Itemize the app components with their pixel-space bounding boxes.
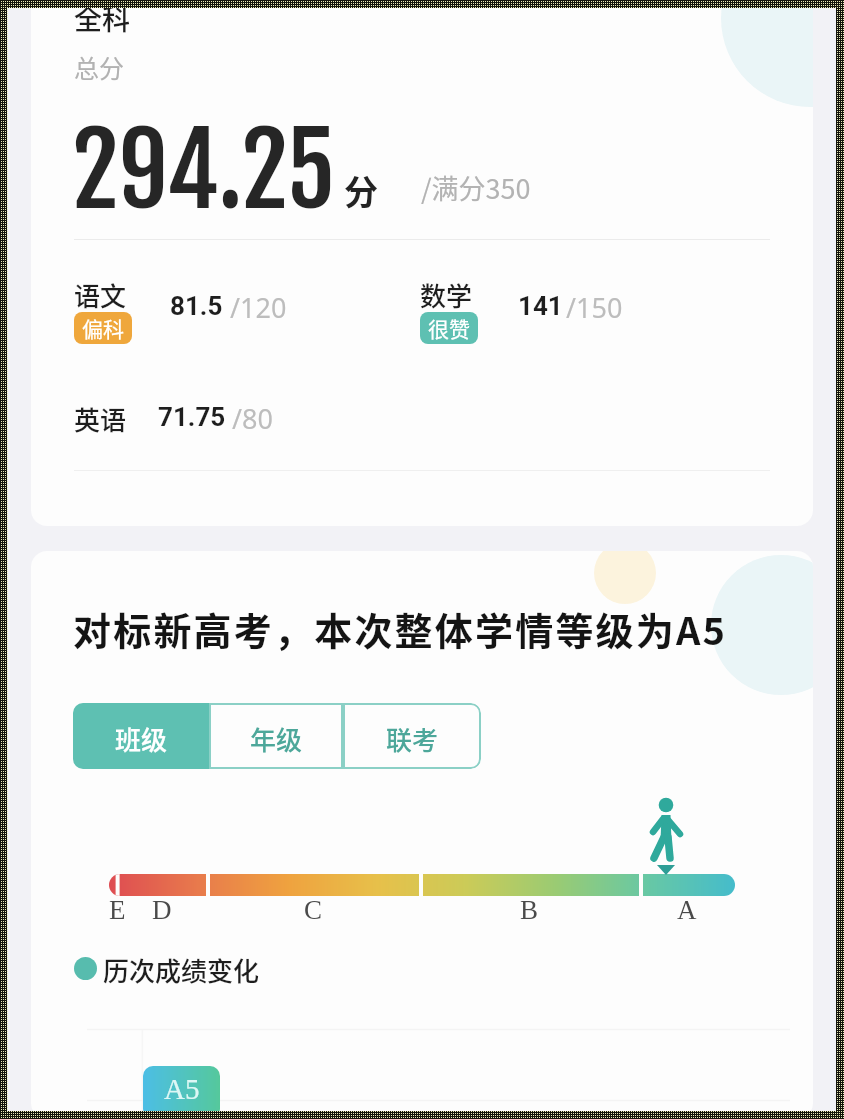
- staticText: A5: [164, 1073, 200, 1105]
- button[interactable]: A5: [143, 1066, 220, 1119]
- button[interactable]: 班级: [73, 703, 209, 769]
- button[interactable]: 全科: [31, 0, 813, 526]
- staticText: 294.25: [72, 109, 335, 232]
- button[interactable]: 联考: [343, 703, 481, 769]
- staticText: E: [109, 895, 126, 925]
- button[interactable]: 很赞: [420, 312, 478, 344]
- staticText: 81.5: [170, 291, 223, 321]
- staticText: 141: [518, 291, 563, 321]
- staticText: D: [152, 895, 172, 925]
- other: Grade band, current level A: [31, 551, 813, 1119]
- staticText: 年级: [250, 720, 303, 758]
- button[interactable]: 偏科: [74, 312, 132, 344]
- staticText: 很赞: [428, 313, 470, 343]
- staticText: 数学: [420, 276, 473, 314]
- staticText: /满分350: [421, 168, 531, 207]
- staticText: B: [520, 895, 539, 925]
- staticText: 联考: [386, 720, 439, 758]
- staticText: 语文: [74, 276, 127, 314]
- staticText: /120: [230, 289, 287, 326]
- staticText: C: [304, 895, 323, 925]
- staticText: 分: [344, 166, 378, 215]
- staticText: 班级: [115, 720, 168, 758]
- staticText: 英语: [74, 400, 127, 438]
- staticText: /150: [566, 289, 623, 326]
- staticText: 总分: [74, 49, 125, 85]
- staticText: 71.75: [158, 402, 226, 432]
- staticText: /80: [232, 400, 273, 437]
- staticText: A: [677, 895, 697, 925]
- button[interactable]: 历次成绩变化: [74, 951, 260, 985]
- staticText: 对标新高考，本次整体学情等级为A5: [73, 601, 728, 656]
- staticText: 全科: [74, 0, 131, 39]
- staticText: 偏科: [82, 313, 124, 343]
- staticText: 历次成绩变化: [103, 951, 260, 985]
- button[interactable]: 年级: [209, 703, 343, 769]
